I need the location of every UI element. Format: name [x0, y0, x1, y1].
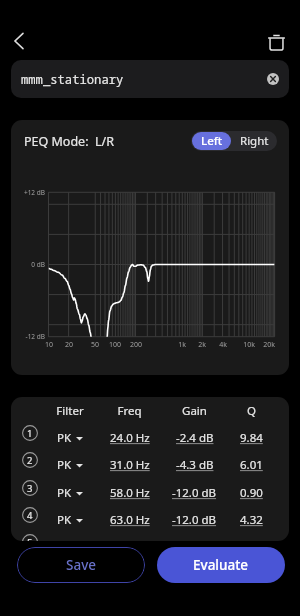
- button[interactable]: Delete preset: [258, 24, 294, 60]
- staticText: 0 dB: [12, 260, 45, 269]
- staticText: PK: [57, 512, 72, 528]
- button[interactable]: 58.0 Hz: [107, 480, 152, 506]
- button[interactable]: 4.32: [229, 507, 274, 533]
- staticText: 4k: [211, 340, 235, 350]
- staticText: -12.0 dB: [172, 485, 217, 501]
- button[interactable]: PK: [48, 480, 92, 506]
- button[interactable]: Evaluate: [157, 547, 285, 583]
- staticText: PEQ Mode: L/R: [24, 133, 114, 150]
- staticText: 10: [37, 340, 61, 350]
- staticText: 58.0 Hz: [110, 485, 150, 501]
- staticText: 63.0 Hz: [110, 512, 150, 528]
- button[interactable]: Save: [17, 547, 145, 583]
- button[interactable]: 0.90: [229, 480, 274, 506]
- button[interactable]: Back: [1, 23, 37, 59]
- staticText: Left: [201, 133, 223, 149]
- staticText: -4.3 dB: [176, 457, 214, 473]
- staticText: 50: [83, 340, 107, 350]
- staticText: 4.32: [240, 512, 263, 528]
- staticText: 20: [57, 340, 81, 350]
- button[interactable]: mmm_stationary: [11, 60, 289, 98]
- staticText: 5: [27, 536, 33, 541]
- staticText: 3: [27, 482, 33, 495]
- button[interactable]: Left: [192, 132, 231, 150]
- staticText: PK: [57, 485, 72, 501]
- button[interactable]: PK: [48, 425, 92, 451]
- staticText: PK: [57, 430, 72, 446]
- staticText: 1k: [170, 340, 194, 350]
- staticText: 0.90: [240, 485, 263, 501]
- button[interactable]: PK: [48, 452, 92, 478]
- button[interactable]: 31.0 Hz: [107, 452, 152, 478]
- button[interactable]: PK: [48, 507, 92, 533]
- staticText: Gain: [172, 403, 217, 419]
- staticText: 100: [103, 340, 127, 350]
- button[interactable]: -12.0 dB: [172, 507, 217, 533]
- staticText: 31.0 Hz: [110, 457, 150, 473]
- staticText: 2k: [190, 340, 214, 350]
- staticText: 2: [27, 454, 33, 467]
- staticText: Freq: [107, 403, 152, 419]
- staticText: 4: [27, 509, 33, 522]
- staticText: Right: [240, 133, 269, 149]
- staticText: 200: [124, 340, 148, 350]
- button[interactable]: -12.0 dB: [172, 480, 217, 506]
- staticText: 1: [27, 427, 33, 440]
- staticText: mmm_stationary: [21, 71, 124, 88]
- button[interactable]: 24.0 Hz: [107, 425, 152, 451]
- staticText: Q: [229, 403, 274, 419]
- staticText: 10k: [237, 340, 261, 350]
- staticText: -2.4 dB: [176, 430, 214, 446]
- staticText: 24.0 Hz: [110, 430, 150, 446]
- staticText: 6.01: [240, 457, 263, 473]
- staticText: Filter: [48, 403, 92, 419]
- staticText: PK: [57, 457, 72, 473]
- staticText: Save: [66, 556, 97, 574]
- staticText: Evaluate: [193, 556, 249, 574]
- button[interactable]: 6.01: [229, 452, 274, 478]
- staticText: +12 dB: [12, 188, 45, 197]
- button[interactable]: Right: [232, 131, 277, 151]
- button[interactable]: -4.3 dB: [172, 452, 217, 478]
- button[interactable]: 9.84: [229, 425, 274, 451]
- button[interactable]: Clear name: [262, 68, 284, 90]
- button[interactable]: -2.4 dB: [172, 425, 217, 451]
- button[interactable]: 63.0 Hz: [107, 507, 152, 533]
- staticText: -12 dB: [12, 332, 45, 341]
- staticText: 20k: [257, 340, 281, 350]
- staticText: 9.84: [240, 430, 263, 446]
- staticText: -12.0 dB: [172, 512, 217, 528]
